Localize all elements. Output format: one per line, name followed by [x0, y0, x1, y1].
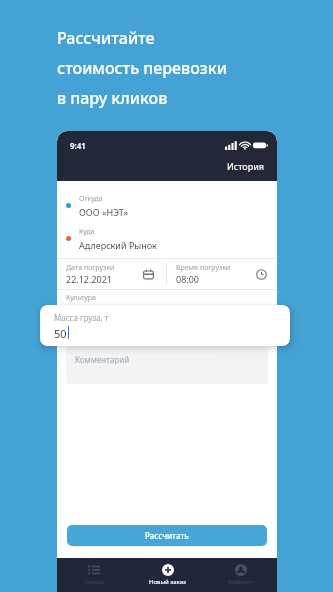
- staticText: 22.12.2021: [66, 273, 113, 285]
- staticText: ООО «НЭТ»: [79, 206, 129, 218]
- button[interactable]: Заказы: [57, 558, 131, 592]
- button[interactable]: Культура: [57, 290, 277, 317]
- staticText: Масса груза, т: [54, 312, 109, 323]
- staticText: 08:00: [176, 273, 200, 285]
- staticText: Новый заказ: [149, 578, 186, 586]
- button[interactable]: Откуда: [57, 181, 277, 218]
- staticText: в пару кликов: [57, 87, 168, 109]
- staticText: Кабинет: [228, 578, 253, 586]
- other: Pick time: [256, 269, 267, 280]
- staticText: Адлерский Рынок: [79, 239, 157, 251]
- button[interactable]: История: [224, 157, 267, 175]
- staticText: Рассчитайте: [57, 27, 155, 49]
- staticText: Заказы: [84, 578, 105, 586]
- staticText: Откуда: [79, 194, 103, 204]
- staticText: Дата погрузки: [66, 263, 115, 273]
- staticText: 9:41: [70, 140, 86, 151]
- button[interactable]: Кабинет: [204, 558, 277, 592]
- staticText: Время погрузки: [176, 263, 231, 273]
- button[interactable]: Новый заказ: [131, 558, 204, 592]
- button[interactable]: Рассчитать: [67, 525, 267, 546]
- staticText: Пшеница 4 класс: [66, 303, 141, 315]
- staticText: Куда: [79, 227, 95, 237]
- staticText: Комментарий: [75, 354, 130, 365]
- other: Pick date: [143, 269, 154, 280]
- button[interactable]: Комментарий: [66, 347, 268, 384]
- staticText: Культура: [66, 293, 96, 303]
- staticText: История: [227, 160, 264, 172]
- button[interactable]: Куда: [57, 218, 277, 251]
- staticText: стоимость перевозки: [57, 57, 227, 79]
- staticText: Рассчитать: [145, 530, 189, 541]
- staticText: 50: [54, 326, 67, 341]
- button[interactable]: Масса груза, т: [40, 305, 290, 346]
